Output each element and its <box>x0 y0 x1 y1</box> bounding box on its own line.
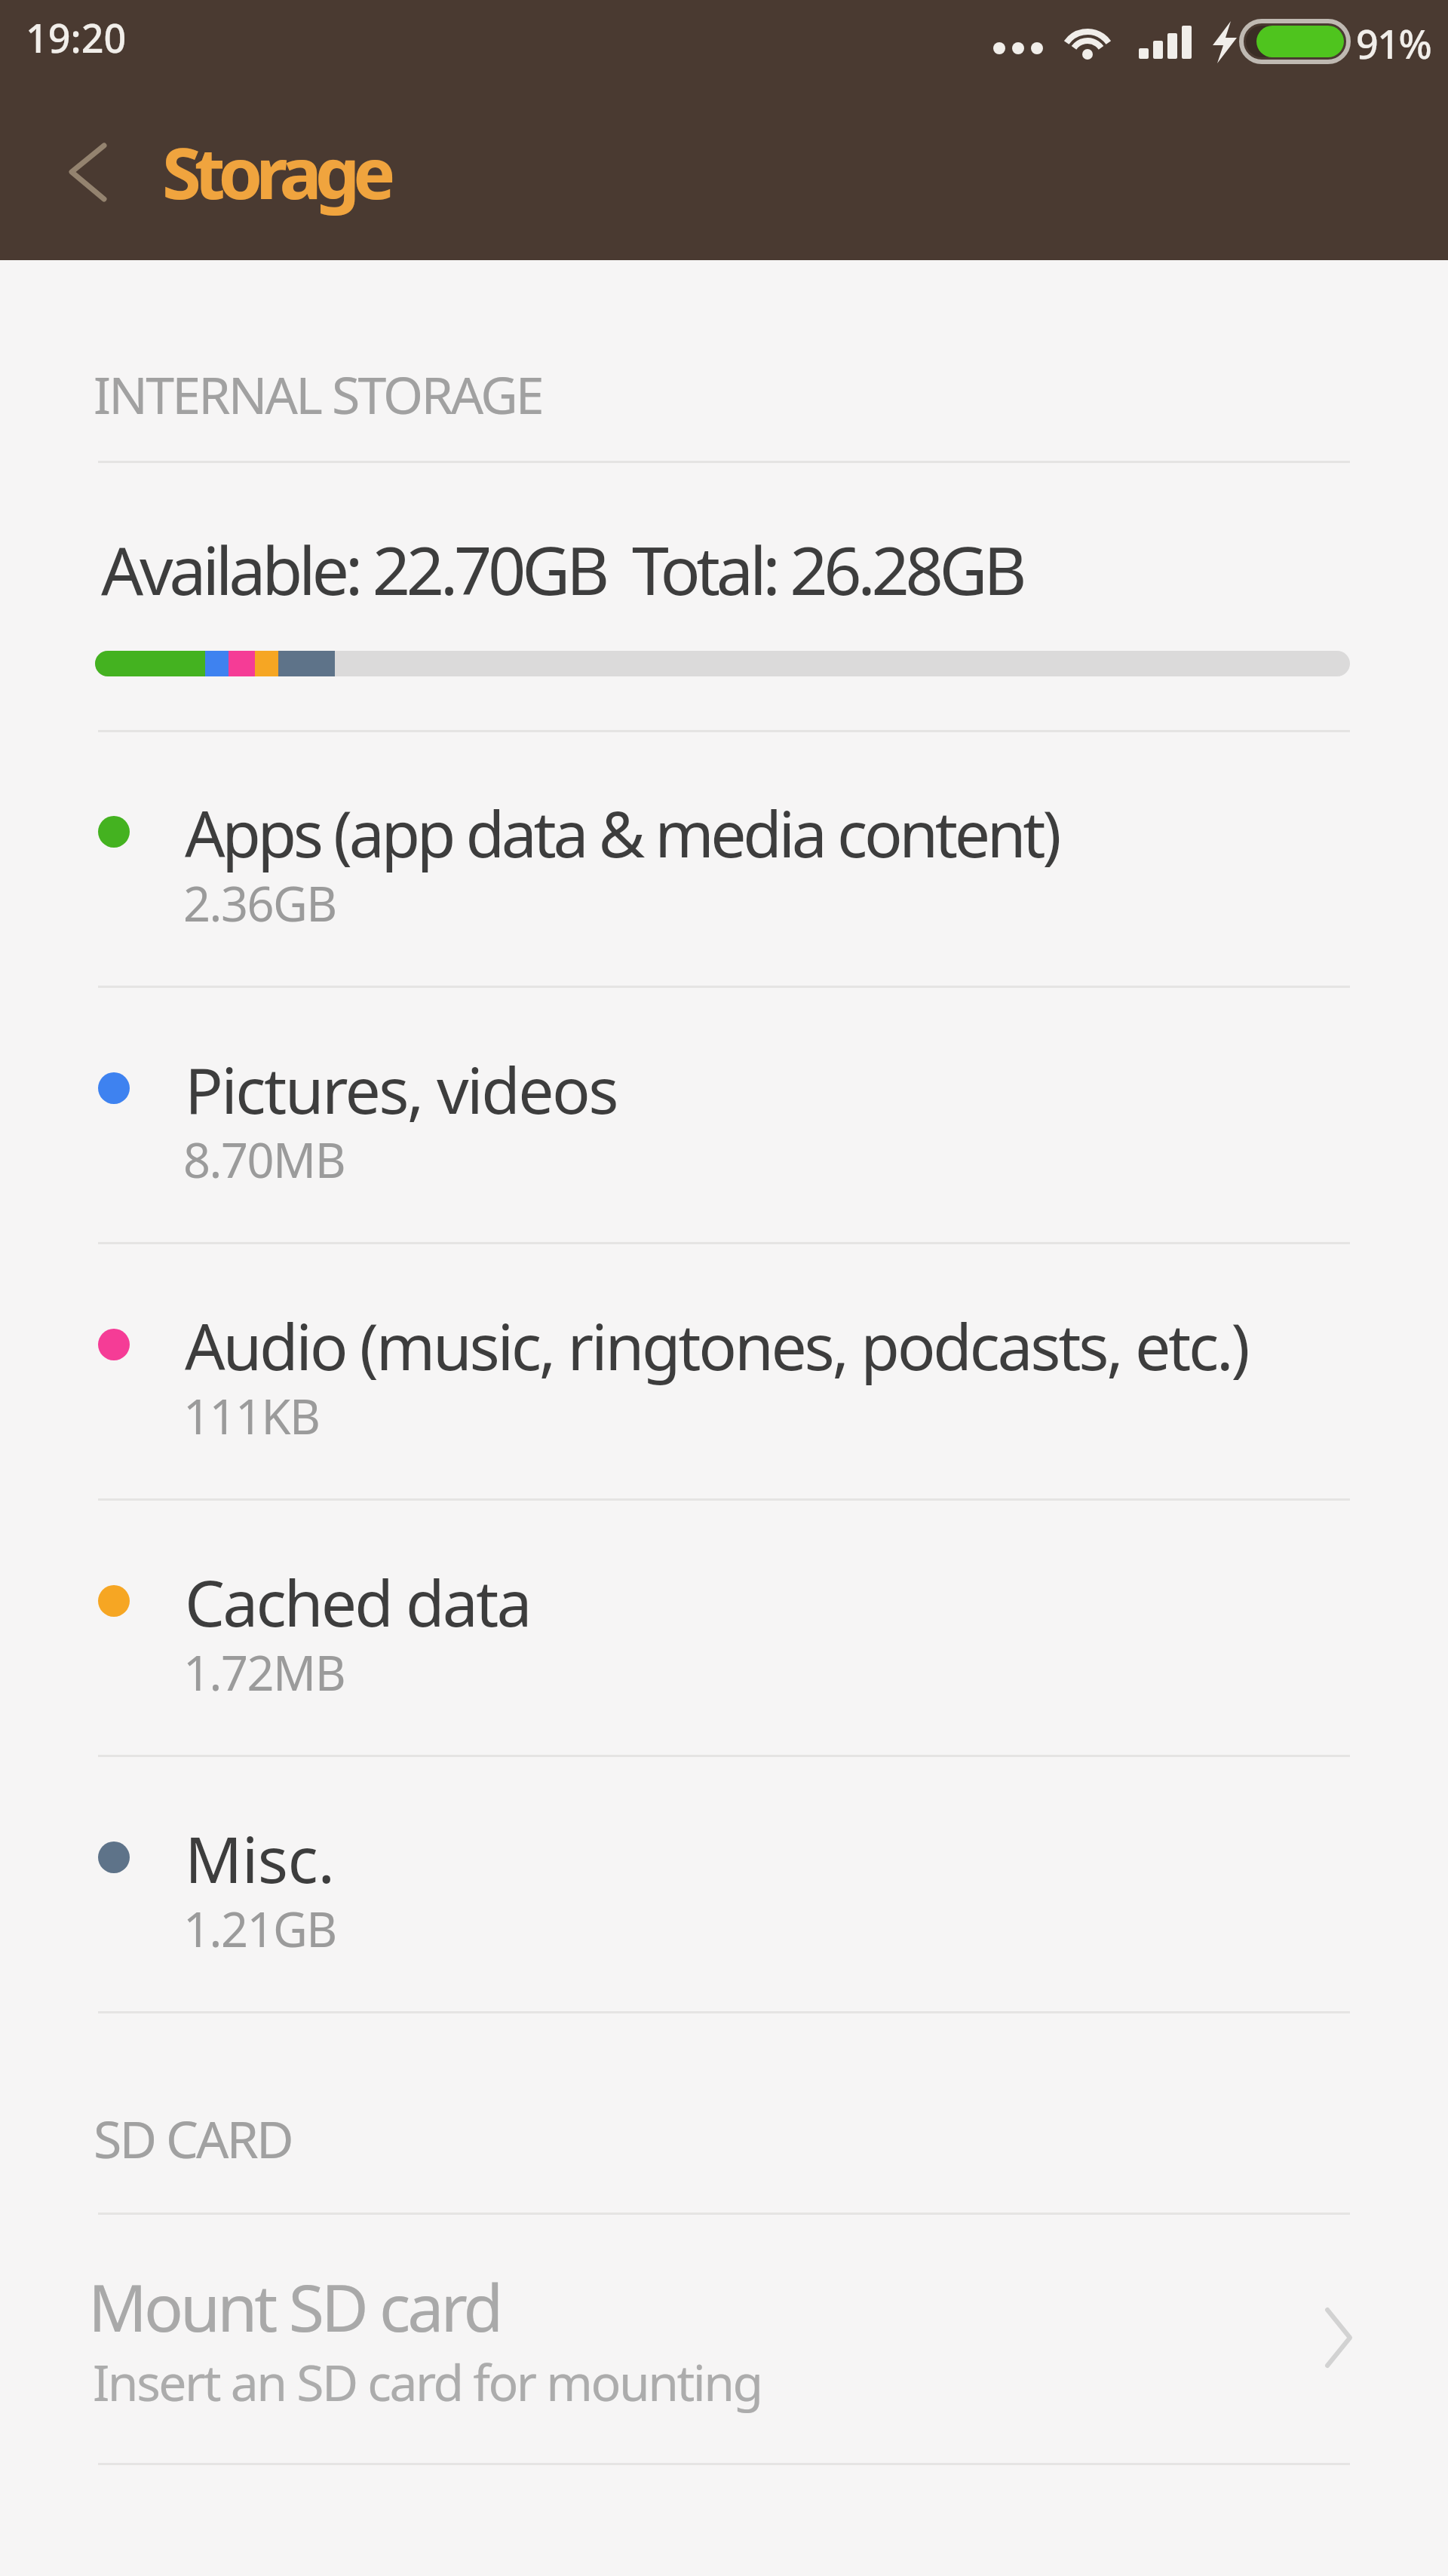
staticText: 111KB <box>183 1384 320 1449</box>
staticText: Audio (music, ringtones, podcasts, etc.) <box>185 1302 1248 1388</box>
staticText: 19:20 <box>26 11 127 64</box>
staticText: Available: 22.70GB Total: 26.28GB <box>101 524 1023 615</box>
button[interactable]: Audio (music, ringtones, podcasts, etc.) <box>0 1244 1448 1501</box>
staticText: 1.72MB <box>183 1640 345 1705</box>
staticText: Apps (app data & media content) <box>185 790 1058 876</box>
button[interactable]: Pictures, videos <box>0 988 1448 1244</box>
staticText: 1.21GB <box>183 1897 336 1961</box>
staticText: 2.36GB <box>183 871 336 936</box>
staticText: SD CARD <box>94 2103 292 2173</box>
staticText: 91% <box>1356 17 1431 70</box>
staticText: Mount SD card <box>88 2262 501 2351</box>
button[interactable]: Apps (app data & media content) <box>0 731 1448 988</box>
button[interactable]: Mount SD card <box>0 2215 1448 2464</box>
staticText: Storage <box>162 124 389 220</box>
staticText: 8.70MB <box>183 1127 345 1192</box>
staticText: Insert an SD card for mounting <box>93 2348 762 2415</box>
staticText: Cached data <box>185 1559 530 1645</box>
staticText: INTERNAL STORAGE <box>94 359 542 429</box>
staticText: Misc. <box>185 1815 335 1901</box>
button[interactable]: Cached data <box>0 1501 1448 1757</box>
staticText: Pictures, videos <box>185 1046 617 1132</box>
button[interactable] <box>30 113 143 234</box>
button[interactable]: Misc. <box>0 1757 1448 2013</box>
